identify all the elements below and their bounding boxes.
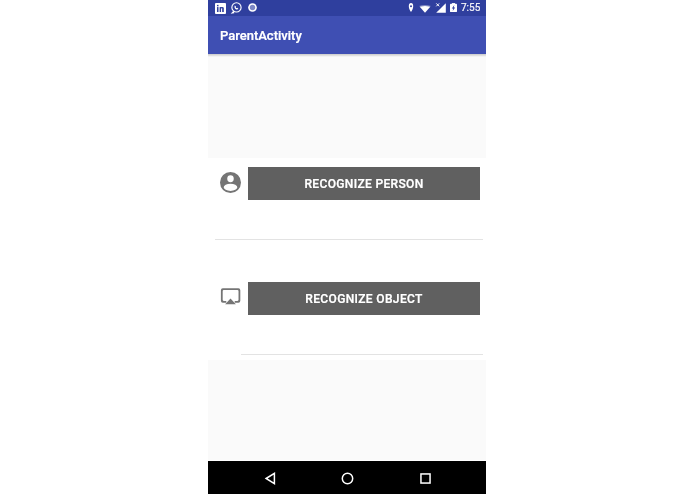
button[interactable]: RECOGNIZE PERSON [248,167,480,200]
staticText: 7:55 [461,2,481,14]
button[interactable]: Recognize object [220,286,241,307]
staticText: RECOGNIZE OBJECT [305,292,423,306]
button[interactable]: Recent apps [409,462,441,494]
button[interactable]: Recognize person [220,172,241,193]
button[interactable]: RECOGNIZE OBJECT [248,282,480,315]
button[interactable]: Back [254,462,286,494]
staticText: RECOGNIZE PERSON [304,177,424,191]
staticText: ParentActivity [220,28,302,43]
button[interactable]: Home [331,462,363,494]
